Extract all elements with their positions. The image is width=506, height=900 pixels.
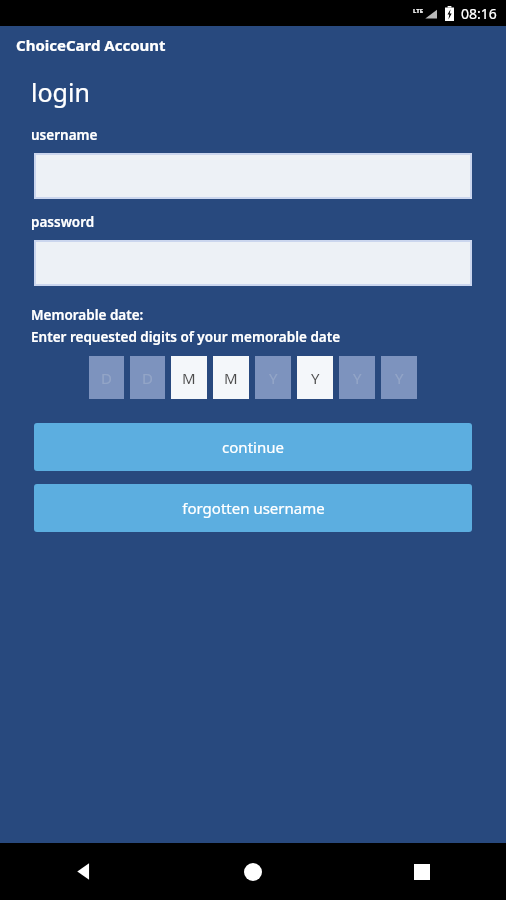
- staticText: login: [31, 75, 90, 109]
- staticText: password: [31, 213, 95, 231]
- button[interactable]: Back: [0, 843, 168, 900]
- staticText: Memorable date:: [31, 306, 144, 324]
- staticText: forgotten username: [182, 498, 325, 518]
- staticText: 08:16: [461, 4, 497, 23]
- button[interactable]: M: [213, 356, 249, 399]
- button[interactable]: M: [171, 356, 207, 399]
- staticText: M: [224, 368, 238, 388]
- button[interactable]: Recents: [337, 843, 506, 900]
- button[interactable]: Home: [168, 843, 337, 900]
- staticText: D: [142, 368, 153, 388]
- button[interactable]: Y: [297, 356, 333, 399]
- button[interactable]: continue: [34, 423, 472, 471]
- button[interactable]: D: [130, 356, 165, 399]
- staticText: Y: [395, 368, 404, 388]
- staticText: D: [101, 368, 112, 388]
- staticText: username: [31, 126, 98, 144]
- staticText: continue: [222, 437, 284, 457]
- button[interactable]: forgotten username: [34, 484, 472, 532]
- staticText: M: [182, 368, 196, 388]
- staticText: LTE: [413, 7, 424, 15]
- staticText: Y: [353, 368, 362, 388]
- staticText: Y: [311, 368, 320, 388]
- staticText: Enter requested digits of your memorable…: [31, 328, 341, 346]
- staticText: Y: [269, 368, 278, 388]
- button[interactable]: D: [89, 356, 124, 399]
- staticText: ChoiceCard Account: [16, 35, 166, 55]
